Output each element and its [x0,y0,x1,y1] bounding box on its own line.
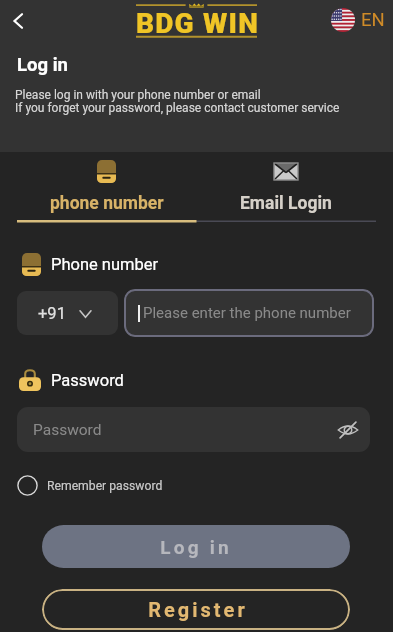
button[interactable]: Remember password [17,475,163,496]
staticText: phone number [50,193,164,214]
staticText: Please log in with your phone number or … [15,88,261,102]
staticText: Register [148,598,248,621]
staticText: Log in [160,536,232,558]
staticText: Please enter the phone number [143,304,351,322]
staticText: EN [361,9,385,31]
staticText: Phone number [51,255,159,274]
button[interactable]: Please enter the phone number [124,289,374,337]
staticText: If you forget your password, please cont… [15,101,340,115]
button[interactable]: Register [42,589,350,630]
staticText: +91 [38,304,66,323]
button[interactable]: Email Login [196,152,376,220]
staticText: Password [33,421,102,439]
staticText: Email Login [240,193,332,214]
button[interactable]: phone number [17,152,196,220]
button[interactable]: Password [17,407,370,452]
button[interactable]: +91 [17,291,118,335]
button[interactable]: EN [331,8,385,32]
staticText: Password [51,371,124,390]
button[interactable]: Show password [335,417,361,443]
staticText: BDG WIN [136,7,257,40]
button[interactable]: Log in [42,525,350,568]
staticText: Log in [17,54,68,76]
button[interactable]: Back [2,5,34,37]
staticText: Remember password [47,479,163,493]
